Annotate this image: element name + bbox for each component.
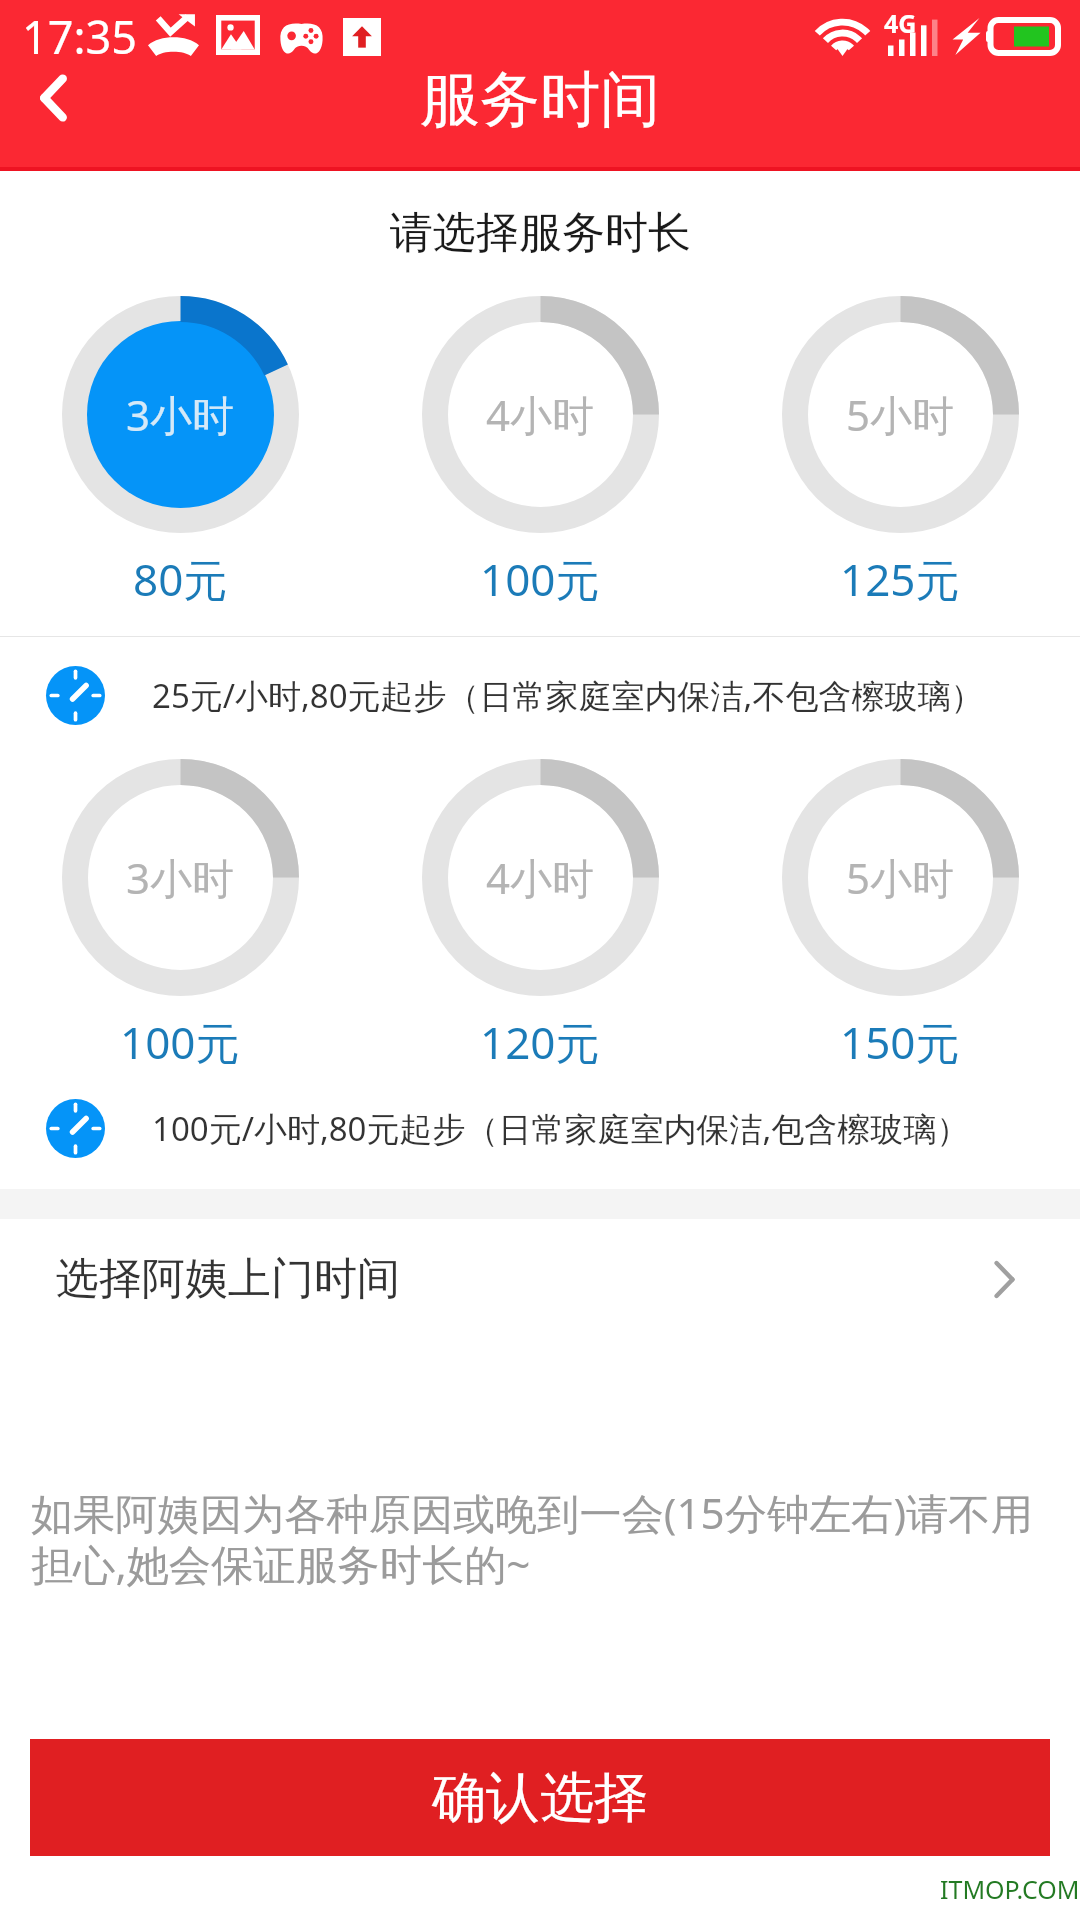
staticText: 125元 (840, 549, 960, 609)
staticText: 5小时 (846, 386, 955, 443)
button[interactable]: 4小时 (360, 296, 720, 608)
button[interactable]: 5小时 (720, 296, 1080, 608)
staticText: 25元/小时,80元起步（日常家庭室内保洁,不包含檫玻璃） (152, 673, 984, 718)
staticText: 如果阿姨因为各种原因或晚到一会(15分钟左右)请不用担心,她会保证服务时长的~ (31, 1484, 1040, 1593)
button[interactable]: 3小时 (0, 759, 360, 1071)
staticText: 选择阿姨上门时间 (56, 1252, 400, 1306)
staticText: 100元/小时,80元起步（日常家庭室内保洁,包含檫玻璃） (152, 1106, 970, 1151)
staticText: 100元 (480, 549, 600, 609)
staticText: 17:35 (22, 6, 138, 62)
button[interactable]: 确认选择 (30, 1739, 1050, 1856)
staticText: 3小时 (126, 386, 235, 443)
staticText: 5小时 (846, 849, 955, 906)
staticText: 4小时 (486, 386, 595, 443)
staticText: ITMOP.COM (940, 1872, 1080, 1906)
staticText: 服务时间 (420, 62, 660, 138)
button[interactable]: 4小时 (360, 759, 720, 1071)
staticText: 100元 (120, 1012, 240, 1072)
button[interactable]: 选择阿姨上门时间 (0, 1219, 1080, 1339)
staticText: 4G (884, 6, 917, 40)
staticText: 确认选择 (432, 1764, 648, 1832)
button[interactable]: Back (0, 45, 106, 151)
staticText: 3小时 (126, 849, 235, 906)
button[interactable]: 5小时 (720, 759, 1080, 1071)
staticText: 4小时 (486, 849, 595, 906)
staticText: 80元 (133, 549, 228, 609)
staticText: 120元 (480, 1012, 600, 1072)
button[interactable]: 3小时 (0, 296, 360, 608)
staticText: 150元 (840, 1012, 960, 1072)
staticText: 请选择服务时长 (390, 206, 691, 260)
